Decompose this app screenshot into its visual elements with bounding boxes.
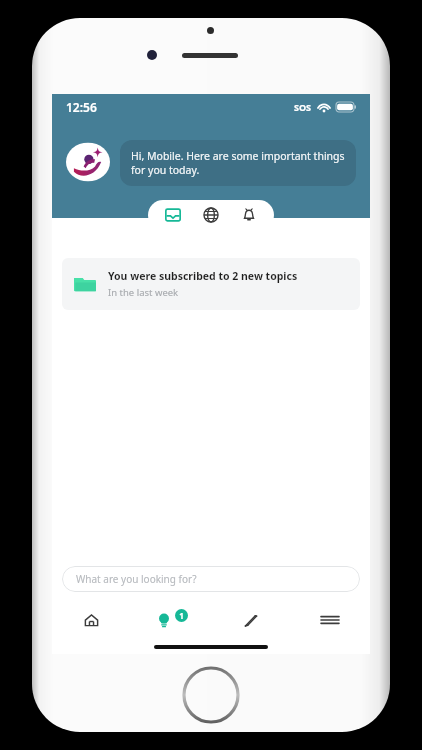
button[interactable]: Home: [52, 600, 131, 640]
button[interactable]: Menu: [290, 600, 370, 640]
button[interactable]: Alerts: [230, 201, 268, 229]
button[interactable]: Inbox: [154, 201, 192, 229]
button[interactable]: What are you looking for?: [62, 566, 360, 592]
staticText: SOS: [294, 101, 312, 113]
button[interactable]: Compose: [210, 600, 290, 640]
button[interactable]: You were subscribed to 2 new topics: [62, 258, 360, 310]
staticText: 1: [179, 610, 184, 621]
staticText: You were subscribed to 2 new topics: [108, 269, 298, 283]
button[interactable]: Insights: [131, 600, 210, 640]
staticText: What are you looking for?: [76, 572, 197, 586]
staticText: In the last week: [108, 286, 179, 299]
button[interactable]: Discover: [192, 201, 230, 229]
staticText: Hi, Mobile. Here are some important thin…: [131, 149, 345, 177]
staticText: 12:56: [66, 99, 97, 115]
